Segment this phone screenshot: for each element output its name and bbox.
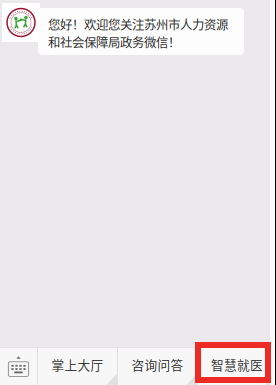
staticText: 掌上大厅: [51, 355, 103, 373]
button[interactable]: 掌上大厅: [38, 348, 117, 385]
button[interactable]: 咨询问答: [118, 348, 197, 385]
staticText: 咨询问答: [131, 355, 183, 373]
staticText: 您好！欢迎您关注苏州市人力资源和社会保障局政务微信！: [48, 15, 228, 51]
staticText: 智慧就医: [211, 355, 263, 373]
button[interactable]: 智慧就医: [198, 348, 276, 385]
button[interactable]: Keyboard: [0, 348, 37, 385]
